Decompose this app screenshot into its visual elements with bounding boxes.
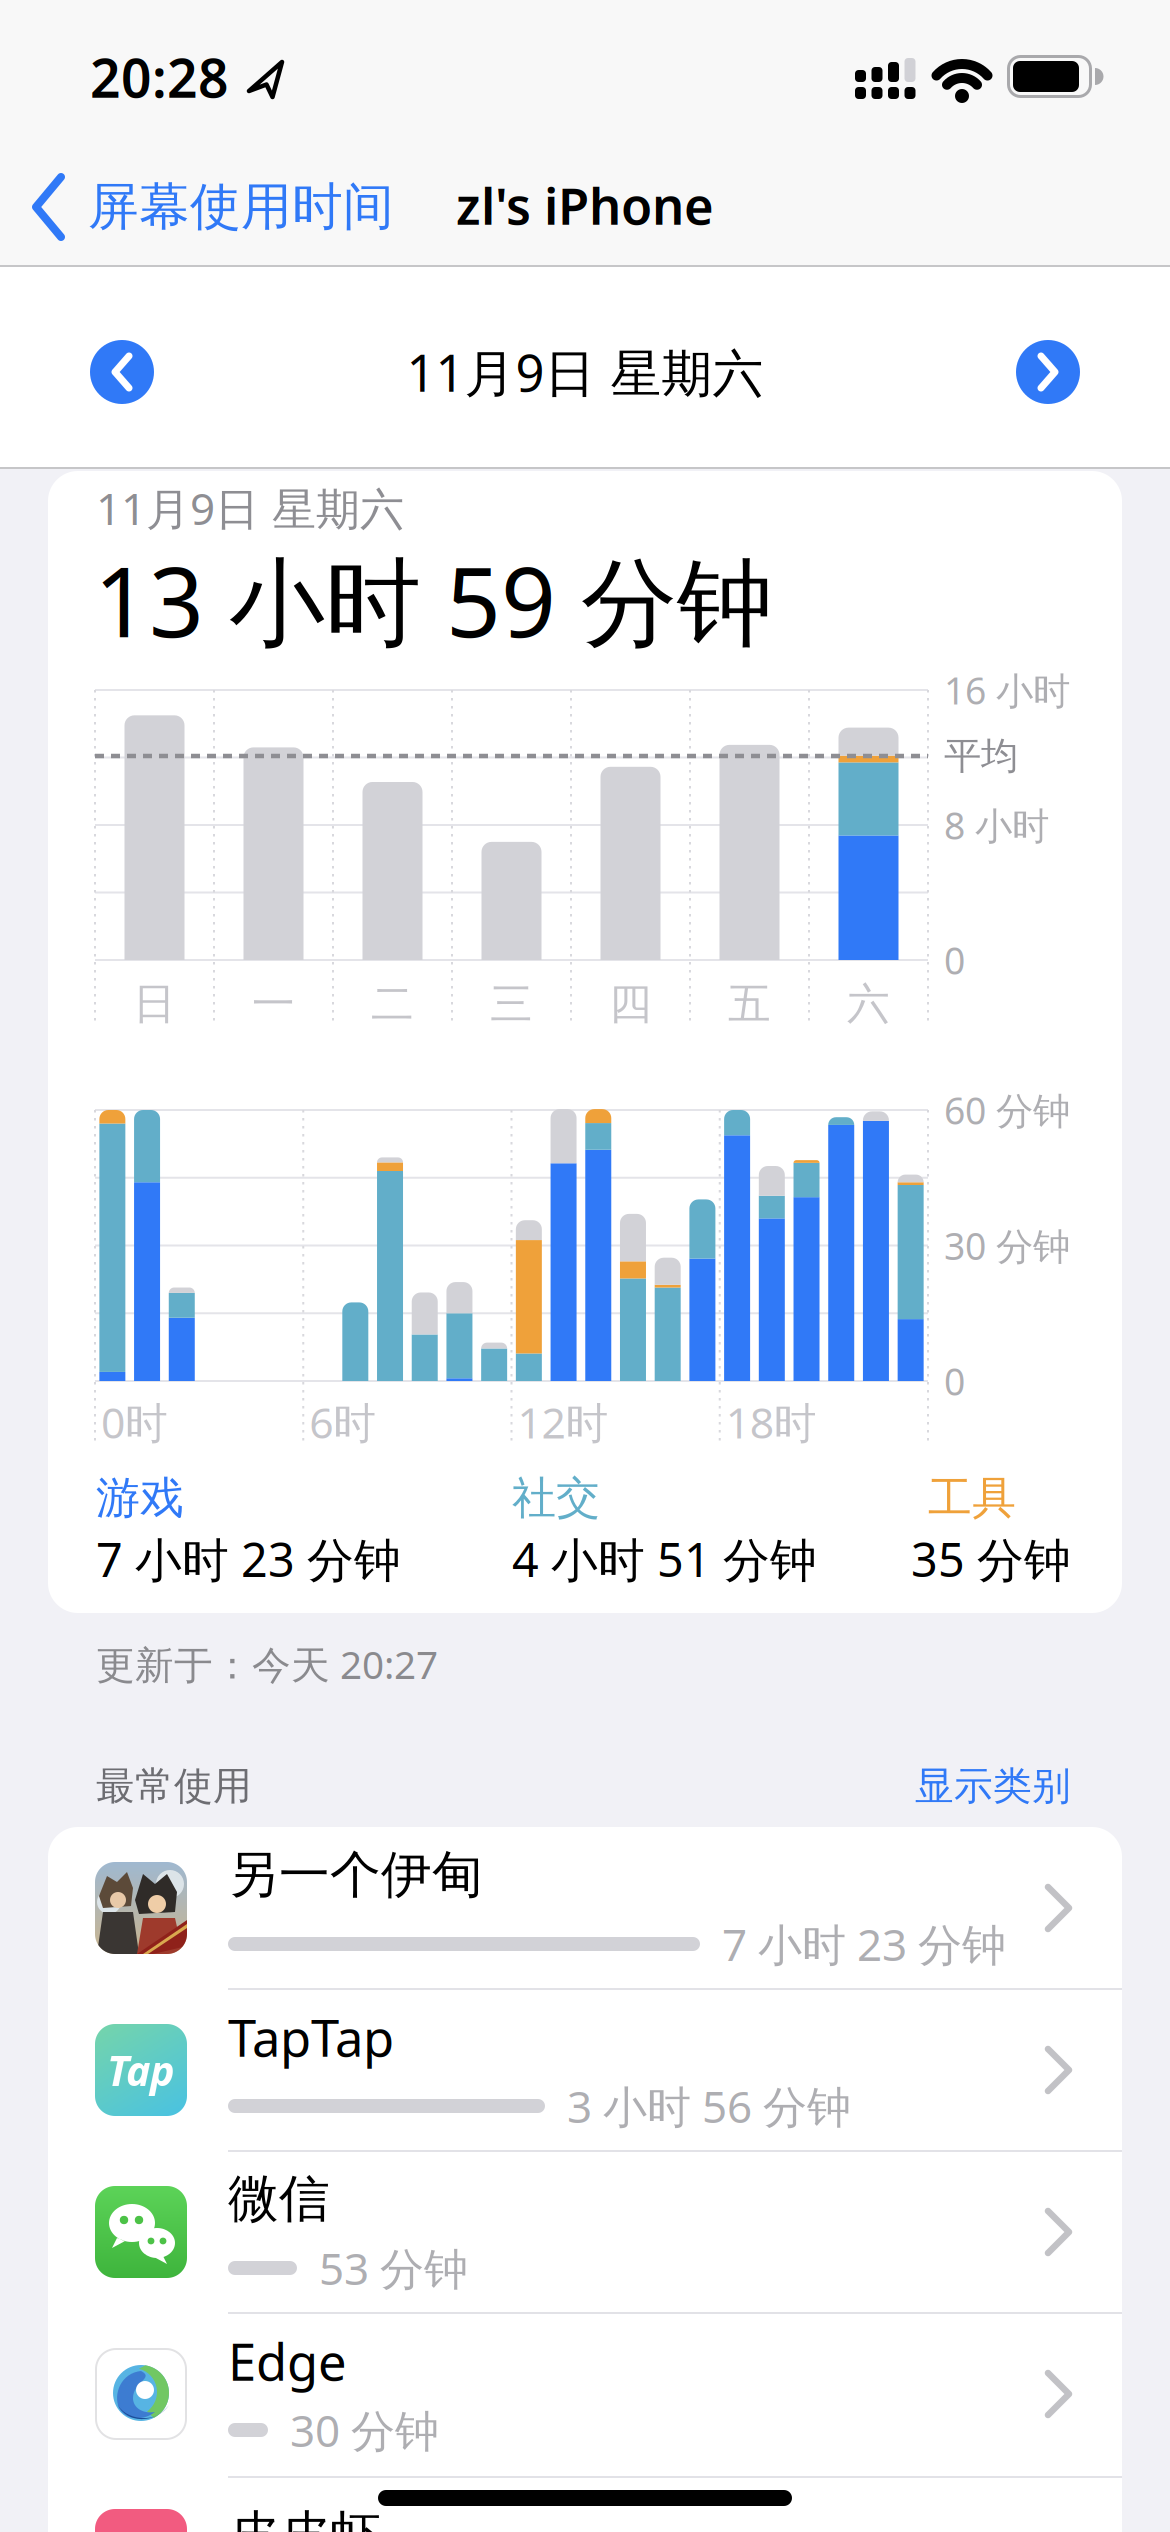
button[interactable]: 前一天: [90, 340, 154, 404]
button[interactable]: 后一天: [1016, 340, 1080, 404]
staticText: 六: [847, 978, 890, 1030]
staticText: 18时: [726, 1394, 817, 1450]
staticText: 6时: [309, 1394, 376, 1450]
staticText: 35 分钟: [911, 1528, 1071, 1590]
staticText: 20:28: [90, 42, 229, 112]
staticText: 30 分钟: [290, 2401, 439, 2459]
staticText: 微信: [228, 2168, 330, 2230]
staticText: 二: [371, 978, 414, 1030]
staticText: 0时: [101, 1394, 168, 1450]
staticText: 游戏: [96, 1471, 184, 1525]
button[interactable]: 微信: [48, 2151, 1122, 2313]
staticText: 16 小时: [944, 665, 1070, 715]
staticText: 0: [944, 1356, 965, 1406]
button[interactable]: 屏幕使用时间: [0, 130, 420, 265]
button[interactable]: 另一个伊甸: [48, 1827, 1122, 1989]
staticText: 日: [133, 978, 176, 1030]
staticText: 7 小时 23 分钟: [722, 1915, 1006, 1973]
staticText: 工具: [928, 1471, 1016, 1525]
staticText: TapTap: [228, 2003, 394, 2071]
staticText: 12时: [517, 1394, 608, 1450]
button[interactable]: Tap: [48, 1989, 1122, 2151]
staticText: 3 小时 56 分钟: [567, 2077, 851, 2135]
staticText: 社交: [512, 1471, 600, 1525]
staticText: 屏幕使用时间: [88, 176, 394, 238]
staticText: 五: [728, 978, 771, 1030]
staticText: 60 分钟: [944, 1085, 1070, 1135]
staticText: 更新于：今天 20:27: [96, 1638, 438, 1690]
staticText: 30 分钟: [944, 1221, 1070, 1270]
staticText: 53 分钟: [319, 2239, 468, 2297]
staticText: 一: [252, 978, 295, 1030]
button[interactable]: 显示类别: [771, 1764, 1071, 1808]
staticText: 最常使用: [96, 1762, 252, 1810]
staticText: 0: [944, 935, 965, 985]
staticText: 三: [490, 978, 533, 1030]
button[interactable]: Edge: [48, 2313, 1122, 2475]
staticText: 皮皮虾: [228, 2504, 381, 2532]
staticText: 8 小时: [944, 800, 1049, 850]
staticText: Edge: [228, 2327, 347, 2395]
staticText: 11月9日 星期六: [96, 479, 404, 537]
staticText: Tap: [107, 2043, 175, 2097]
staticText: 平均: [944, 733, 1018, 779]
staticText: zl's iPhone: [456, 171, 714, 239]
staticText: 另一个伊甸: [228, 1844, 483, 1906]
staticText: 四: [609, 978, 652, 1030]
staticText: 13 小时 59 分钟: [94, 536, 773, 664]
staticText: 7 小时 23 分钟: [96, 1528, 401, 1590]
button[interactable]: 皮皮虾: [48, 2475, 1122, 2532]
staticText: 显示类别: [915, 1762, 1071, 1810]
staticText: 4 小时 51 分钟: [512, 1528, 817, 1590]
staticText: 11月9日 星期六: [406, 338, 763, 406]
